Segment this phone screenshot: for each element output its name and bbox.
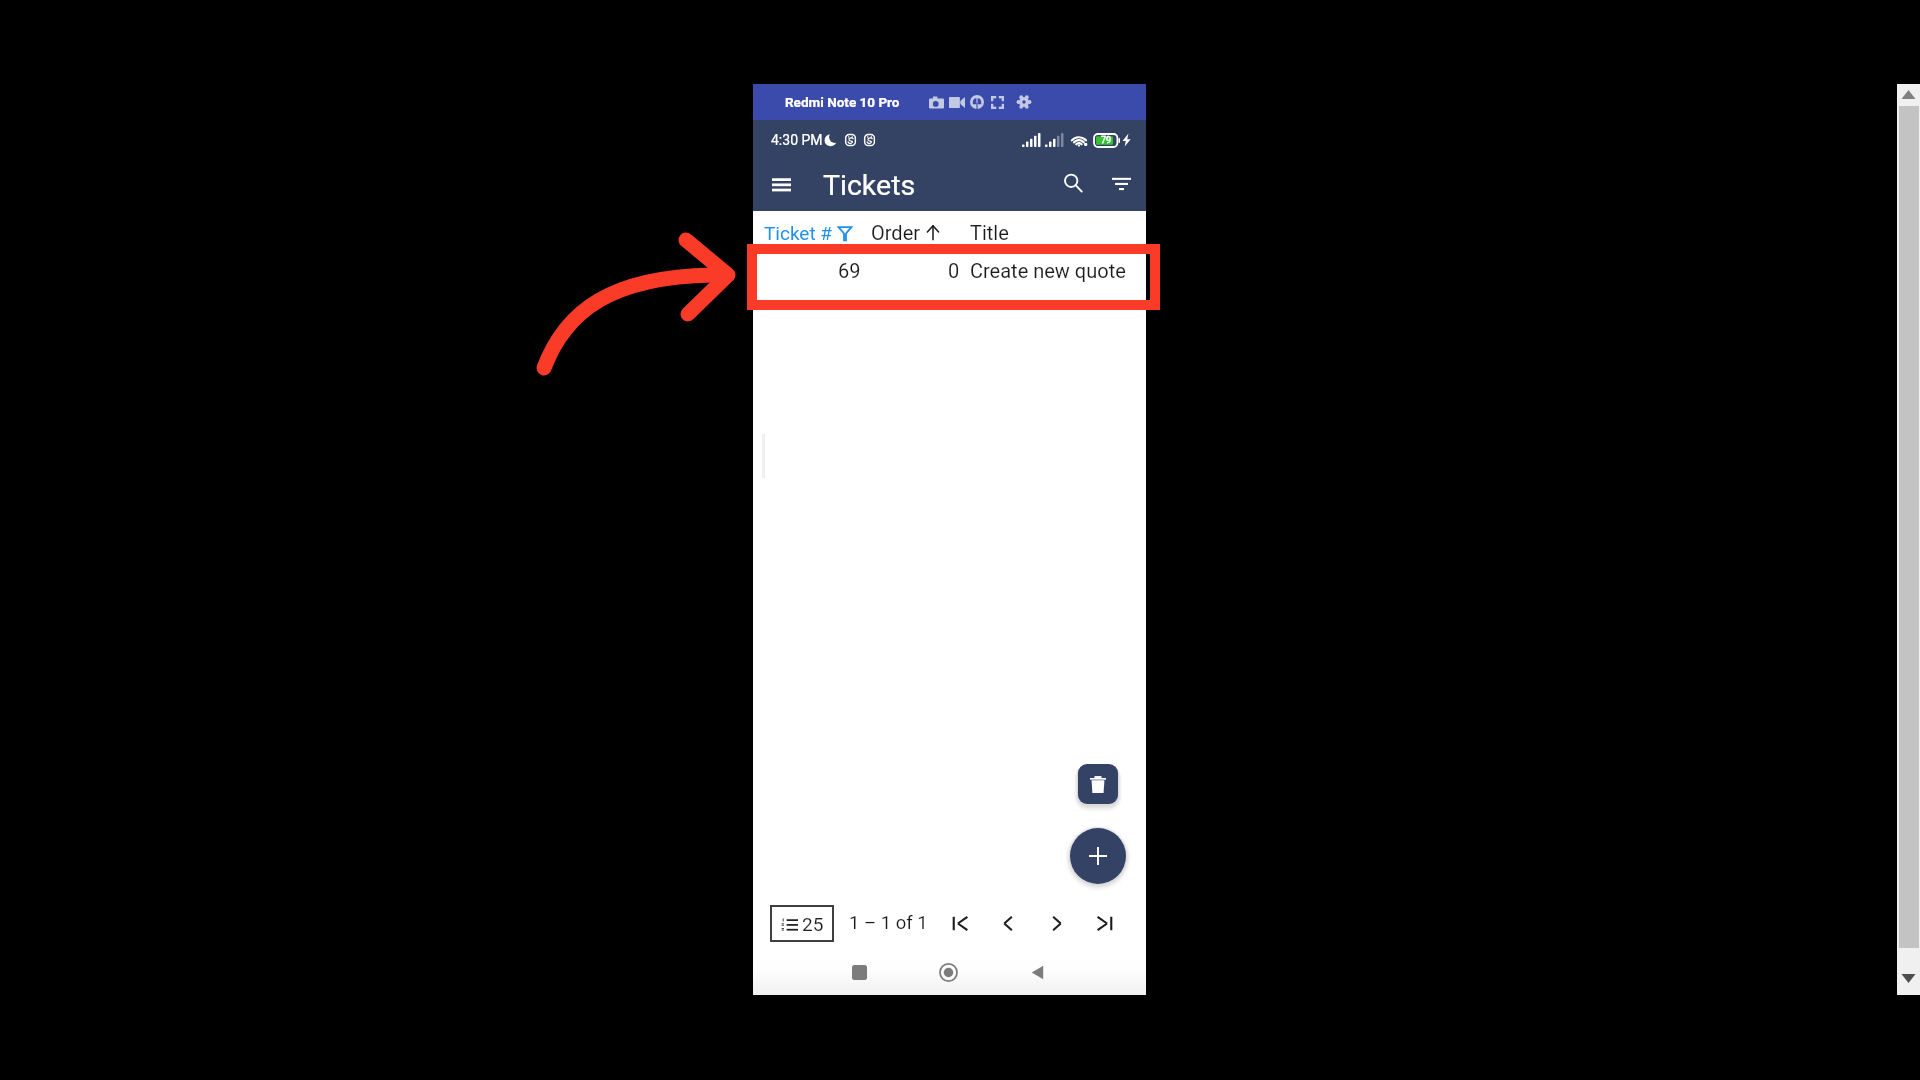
button[interactable]: Record bbox=[947, 84, 967, 120]
staticText: Tickets bbox=[823, 169, 916, 202]
button[interactable]: Settings bbox=[1014, 84, 1034, 120]
button[interactable]: Add bbox=[1070, 828, 1126, 884]
button[interactable]: First page bbox=[945, 907, 978, 940]
button[interactable]: Previous page bbox=[992, 907, 1025, 940]
staticText: Ticket # bbox=[764, 222, 833, 244]
button[interactable]: Filter bbox=[1104, 166, 1138, 200]
button[interactable]: Ticket # bbox=[764, 222, 852, 244]
staticText: 0 bbox=[948, 259, 960, 282]
button[interactable]: 69 bbox=[753, 244, 1146, 300]
staticText: 79 bbox=[1101, 135, 1112, 146]
button[interactable]: Screenshot bbox=[926, 84, 946, 120]
button[interactable]: Fullscreen bbox=[987, 84, 1007, 120]
button[interactable]: Title bbox=[970, 221, 1009, 244]
button[interactable]: Recents bbox=[841, 950, 877, 995]
button[interactable]: Menu bbox=[764, 167, 798, 201]
button[interactable]: Back bbox=[1019, 950, 1055, 995]
button[interactable]: Delete bbox=[1078, 764, 1118, 804]
button[interactable]: Next page bbox=[1040, 907, 1073, 940]
staticText: Redmi Note 10 Pro bbox=[785, 94, 900, 110]
button[interactable]: Audio bbox=[967, 84, 987, 120]
staticText: 69 bbox=[838, 259, 861, 282]
button[interactable]: Last page bbox=[1087, 907, 1120, 940]
button[interactable]: Home bbox=[930, 950, 966, 995]
staticText: Create new quote bbox=[970, 259, 1126, 282]
staticText: 4:30 PM bbox=[771, 132, 823, 148]
staticText: Order bbox=[871, 221, 921, 244]
button[interactable]: 25 bbox=[770, 905, 834, 942]
staticText: 1 – 1 of 1 bbox=[849, 912, 928, 934]
button[interactable]: Search bbox=[1056, 166, 1090, 200]
button[interactable]: Order bbox=[871, 221, 941, 244]
staticText: 25 bbox=[802, 913, 824, 935]
